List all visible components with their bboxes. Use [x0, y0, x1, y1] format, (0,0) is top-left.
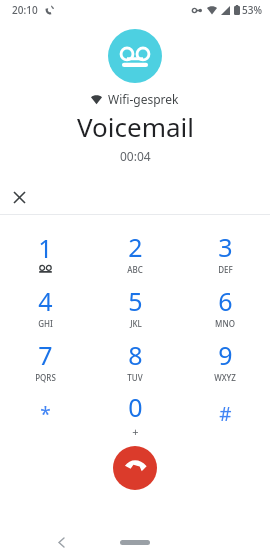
staticText: TUV — [127, 372, 143, 383]
staticText: 8 — [128, 338, 143, 372]
staticText: Wifi-gesprek — [108, 91, 179, 107]
staticText: JKL — [130, 318, 142, 329]
staticText: GHI — [38, 318, 53, 329]
staticText: 2 — [128, 230, 143, 264]
button[interactable]: Back — [50, 531, 72, 553]
button[interactable]: 8 — [90, 333, 180, 387]
button[interactable]: 2 — [90, 225, 180, 279]
button[interactable]: 1 — [0, 225, 90, 279]
button[interactable]: 7 — [0, 333, 90, 387]
staticText: 6 — [218, 284, 233, 318]
staticText: MNO — [215, 318, 235, 329]
button[interactable]: Home — [120, 540, 150, 545]
button[interactable]: End call — [113, 446, 157, 490]
button[interactable]: # — [180, 387, 270, 441]
button[interactable]: 3 — [180, 225, 270, 279]
staticText: PQRS — [35, 372, 56, 383]
button[interactable]: * — [0, 387, 90, 441]
staticText: 3 — [218, 230, 233, 264]
staticText: 53% — [242, 3, 262, 17]
staticText: 5 — [128, 284, 143, 318]
staticText: # — [219, 401, 232, 427]
staticText: Voicemail — [77, 109, 194, 144]
button[interactable]: 0 — [90, 387, 180, 441]
staticText: 0 — [128, 390, 143, 424]
button[interactable]: 9 — [180, 333, 270, 387]
staticText: ABC — [127, 264, 143, 275]
button[interactable]: 5 — [90, 279, 180, 333]
staticText: 7 — [38, 338, 53, 372]
staticText: WXYZ — [214, 372, 236, 383]
button[interactable]: Close — [5, 183, 33, 211]
button[interactable]: 4 — [0, 279, 90, 333]
staticText: 9 — [218, 338, 233, 372]
staticText: * — [40, 401, 51, 427]
staticText: 20:10 — [12, 3, 38, 17]
staticText: 00:04 — [120, 148, 151, 164]
button[interactable]: 6 — [180, 279, 270, 333]
staticText: 1 — [38, 231, 53, 265]
staticText: 4 — [38, 284, 53, 318]
staticText: + — [132, 424, 139, 439]
staticText: DEF — [218, 264, 233, 275]
